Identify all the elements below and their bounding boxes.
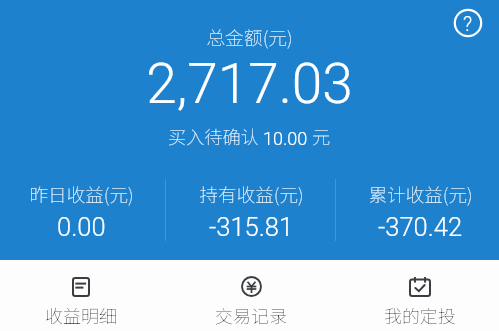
- staticText: 昨日收益(元): [29, 180, 134, 207]
- staticText: -315.81: [209, 212, 294, 242]
- button[interactable]: 昨日收益(元): [6, 180, 156, 242]
- staticText: 2,717.03: [0, 52, 499, 116]
- button[interactable]: Transaction records: [171, 259, 331, 328]
- staticText: 累计收益(元): [368, 180, 473, 207]
- staticText: 元: [308, 123, 331, 149]
- button[interactable]: Income details: [1, 259, 161, 328]
- staticText: -370.42: [378, 212, 463, 242]
- staticText: ?: [463, 12, 473, 35]
- staticText: 总金额(元): [0, 23, 499, 50]
- button[interactable]: Help: [454, 9, 482, 37]
- staticText: 0.00: [57, 212, 106, 242]
- button[interactable]: 累计收益(元): [345, 180, 495, 242]
- staticText: 我的定投: [384, 302, 456, 328]
- staticText: 持有收益(元): [199, 180, 304, 207]
- staticText: 10.00: [263, 128, 308, 149]
- staticText: 交易记录: [215, 302, 287, 328]
- button[interactable]: My auto-invest plans: [340, 259, 499, 328]
- button[interactable]: 持有收益(元): [176, 180, 326, 242]
- staticText: 收益明细: [45, 302, 117, 328]
- staticText: 买入待确认: [168, 123, 263, 149]
